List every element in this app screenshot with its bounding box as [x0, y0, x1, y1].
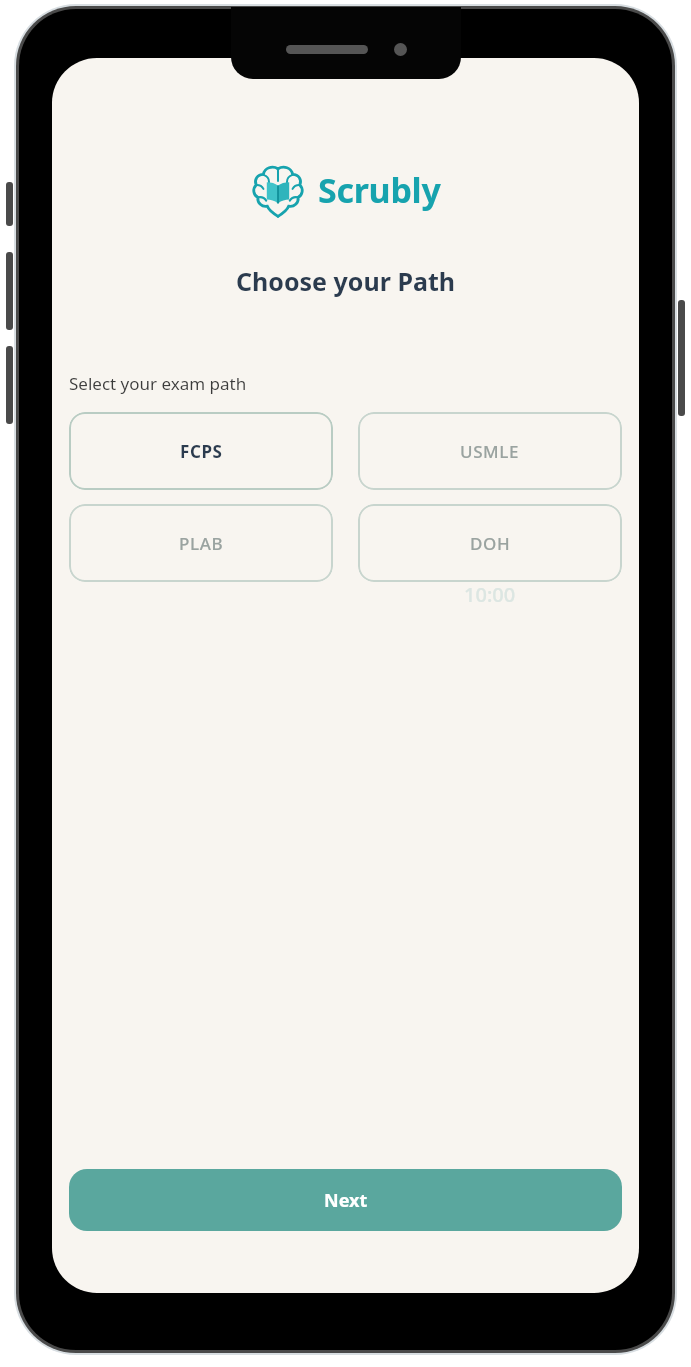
staticText: Choose your Path [236, 264, 455, 298]
staticText: USMLE [460, 440, 520, 463]
staticText: Next [324, 1188, 368, 1213]
button[interactable]: DOH [358, 504, 622, 582]
button[interactable]: FCPS [69, 412, 333, 490]
staticText: PLAB [179, 532, 224, 555]
staticText: 10:00 [464, 581, 516, 608]
button[interactable]: PLAB [69, 504, 333, 582]
staticText: Select your exam path [69, 372, 247, 395]
button[interactable]: USMLE [358, 412, 622, 490]
staticText: Scrubly [318, 167, 441, 213]
staticText: DOH [470, 532, 511, 555]
staticText: FCPS [180, 440, 223, 463]
button[interactable]: Next [69, 1169, 622, 1231]
